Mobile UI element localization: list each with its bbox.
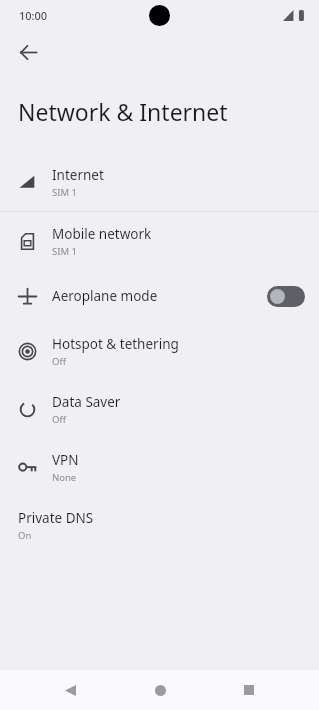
staticText: Aeroplane mode bbox=[52, 287, 267, 305]
staticText: Private DNS bbox=[18, 509, 94, 527]
staticText: Network & Internet bbox=[18, 96, 228, 127]
staticText: VPN bbox=[52, 451, 79, 469]
staticText: Data Saver bbox=[52, 393, 121, 411]
staticText: Internet bbox=[52, 166, 104, 184]
staticText: SIM 1 bbox=[52, 245, 77, 258]
button[interactable]: Home bbox=[141, 671, 179, 709]
button[interactable]: Recents bbox=[230, 671, 268, 709]
staticText: Off bbox=[52, 413, 66, 426]
staticText: None bbox=[52, 471, 77, 484]
button[interactable]: Back bbox=[6, 30, 50, 74]
button[interactable]: VPN bbox=[0, 438, 319, 496]
staticText: On bbox=[18, 529, 32, 542]
staticText: Off bbox=[52, 355, 66, 368]
staticText: Hotspot & tethering bbox=[52, 335, 179, 353]
button[interactable]: Back bbox=[51, 671, 89, 709]
button[interactable]: Private DNS bbox=[0, 496, 319, 554]
button[interactable]: Hotspot & tethering bbox=[0, 322, 319, 380]
staticText: 10:00 bbox=[19, 8, 48, 23]
button[interactable]: Aeroplane mode bbox=[0, 270, 319, 322]
staticText: SIM 1 bbox=[52, 186, 77, 199]
button[interactable]: Mobile network bbox=[0, 212, 319, 270]
button[interactable]: Data Saver bbox=[0, 380, 319, 438]
staticText: Mobile network bbox=[52, 225, 152, 243]
button[interactable]: Internet bbox=[0, 153, 319, 211]
